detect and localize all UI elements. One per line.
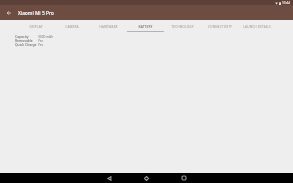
button[interactable]: Navigate up (0, 5, 18, 20)
staticText: Capacity (15, 34, 38, 39)
button[interactable]: CONNECTIVITY (201, 20, 238, 32)
staticText: LAUNCH DETAILS (243, 25, 271, 29)
button[interactable]: CAMERA (54, 20, 90, 32)
button[interactable]: Recent apps (165, 173, 202, 183)
staticText: Removable (15, 38, 38, 43)
staticText: Quick Charge (15, 42, 38, 47)
staticText: CONNECTIVITY (208, 25, 232, 29)
staticText: CAMERA (65, 25, 79, 29)
staticText: 10:44 (282, 1, 291, 5)
button[interactable]: HARDWARE (90, 20, 127, 32)
button[interactable]: Home (128, 173, 165, 183)
staticText: 3000 mAh (38, 35, 54, 39)
staticText: Yes (38, 39, 43, 43)
staticText: Yes (38, 43, 43, 47)
staticText: HARDWARE (99, 25, 118, 29)
button[interactable]: DISPLAY (18, 20, 54, 32)
staticText: TECHNOLOGY (171, 25, 194, 29)
staticText: DISPLAY (29, 25, 43, 29)
button[interactable]: LAUNCH DETAILS (238, 20, 275, 32)
staticText: Xiaomi Mi 5 Pro (18, 10, 54, 17)
button[interactable]: BATTERY (127, 20, 164, 32)
button[interactable]: Back (91, 173, 128, 183)
button[interactable]: TECHNOLOGY (164, 20, 201, 32)
staticText: BATTERY (138, 25, 153, 29)
